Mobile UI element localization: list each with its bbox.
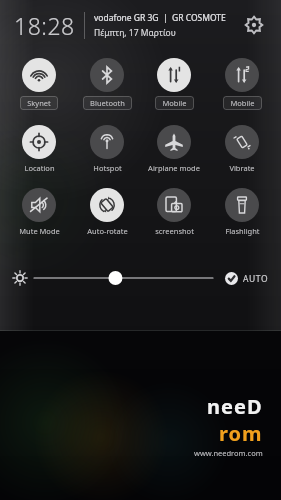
staticText: www.needrom.com (194, 448, 263, 458)
button[interactable]: screenshot (141, 186, 207, 238)
button[interactable]: Skynet (6, 56, 72, 112)
staticText: Flashlight (225, 226, 260, 236)
staticText: Location (24, 163, 55, 173)
staticText: Πέμπτη, 17 Μαρτίου (94, 27, 176, 39)
staticText: Airplane mode (148, 163, 200, 173)
button[interactable]: Mute Mode (6, 186, 72, 238)
button[interactable]: Hotspot (74, 123, 140, 175)
button[interactable]: Flashlight (209, 186, 275, 238)
button[interactable]: Settings (237, 8, 271, 42)
staticText: Bluetooth (90, 98, 125, 108)
staticText: Auto-rotate (87, 226, 128, 236)
button[interactable]: Vibrate (209, 123, 275, 175)
button[interactable]: Airplane mode (141, 123, 207, 175)
button[interactable]: Auto-rotate (74, 186, 140, 238)
staticText: Vibrate (229, 163, 255, 173)
staticText: Skynet (27, 98, 51, 108)
button[interactable]: Mobile (209, 56, 275, 112)
button[interactable]: Location (6, 123, 72, 175)
staticText: screenshot (155, 226, 194, 236)
button[interactable]: Bluetooth (74, 56, 140, 112)
staticText: vodafone GR 3G | GR COSMOTE 2G (94, 12, 237, 24)
staticText: 18:28 (14, 10, 75, 41)
staticText: rom (219, 420, 263, 447)
staticText: Mobile (162, 98, 187, 108)
button[interactable]: AUTO (223, 270, 271, 287)
staticText: Hotspot (93, 163, 122, 173)
staticText: Mobile (230, 98, 255, 108)
staticText: Mute Mode (19, 226, 60, 236)
staticText: AUTO (243, 273, 269, 285)
button[interactable]: Mobile (141, 56, 207, 112)
staticText: neeD (207, 393, 263, 420)
button[interactable]: Brightness (34, 267, 213, 289)
